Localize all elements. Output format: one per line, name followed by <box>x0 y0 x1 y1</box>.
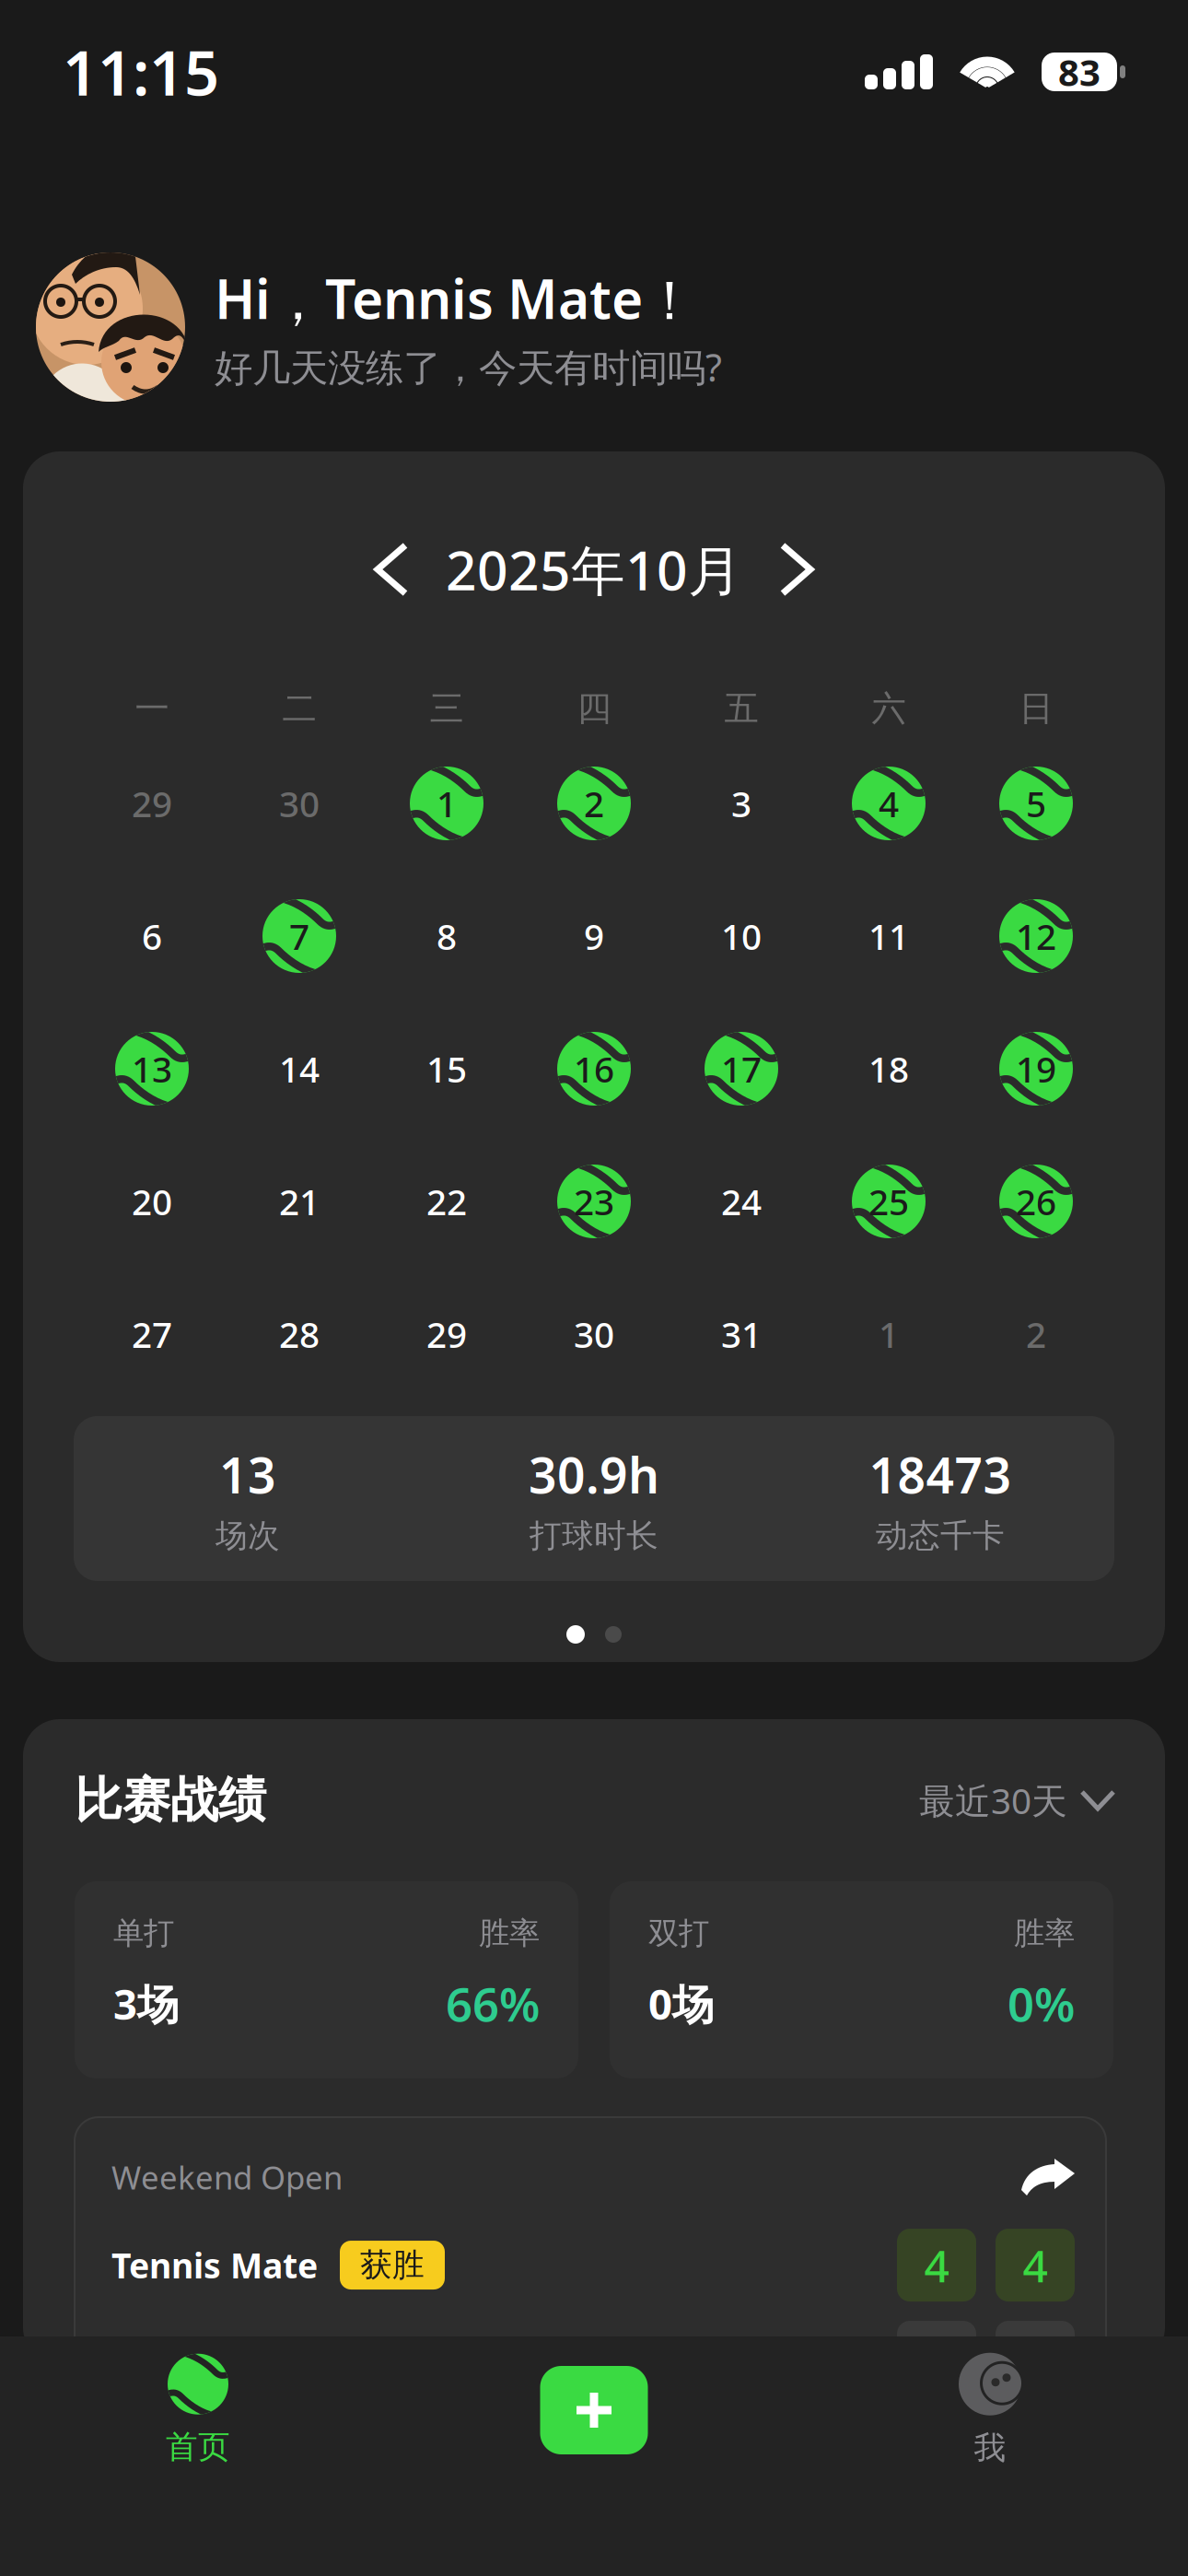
button[interactable]: Previous month <box>359 531 424 608</box>
button[interactable]: Next month <box>764 531 829 608</box>
staticText: 20 <box>132 1178 172 1225</box>
staticText: 11:15 <box>63 31 219 113</box>
staticText: 场次 <box>215 1516 280 1555</box>
staticText: 我 <box>974 2428 1006 2468</box>
staticText: 四 <box>577 687 611 730</box>
staticText: Tennis Mate <box>111 2242 318 2288</box>
staticText: 30 <box>574 1310 614 1358</box>
staticText: 22 <box>426 1178 467 1225</box>
staticText: 4 <box>879 780 899 827</box>
staticText: 0% <box>1007 1972 1075 2034</box>
staticText: 6 <box>142 912 162 960</box>
staticText: 5 <box>1026 780 1046 827</box>
staticText: 24 <box>721 1178 762 1225</box>
staticText: 18473 <box>869 1442 1012 1507</box>
staticText: 日 <box>1019 687 1053 730</box>
staticText: 胜率 <box>1014 1914 1075 1952</box>
staticText: 4 <box>924 2236 949 2294</box>
staticText: 首页 <box>166 2427 230 2467</box>
staticText: 66% <box>446 1972 540 2034</box>
staticText: 14 <box>279 1045 320 1092</box>
staticText: Weekend Open <box>111 2156 343 2198</box>
staticText: 29 <box>132 780 172 827</box>
staticText: 单打 <box>113 1914 174 1952</box>
staticText: 83 <box>1058 47 1101 96</box>
staticText: 打球时长 <box>530 1516 658 1555</box>
staticText: 17 <box>721 1045 762 1092</box>
staticText: 21 <box>279 1178 320 1225</box>
staticText: 2 <box>1026 1310 1046 1358</box>
staticText: 19 <box>1016 1045 1056 1092</box>
staticText: 31 <box>721 1310 762 1358</box>
staticText: 28 <box>279 1310 320 1358</box>
staticText: 胜率 <box>479 1914 540 1952</box>
staticText: 10 <box>721 912 762 960</box>
staticText: 3 <box>731 780 751 827</box>
staticText: 五 <box>724 687 758 730</box>
staticText: 26 <box>1016 1178 1056 1225</box>
staticText: 2025年10月 <box>446 533 742 605</box>
button[interactable]: 最近30天 <box>919 1777 1113 1824</box>
staticText: 11 <box>868 912 909 960</box>
staticText: 双打 <box>648 1914 709 1952</box>
staticText: 8 <box>437 912 457 960</box>
staticText: 25 <box>868 1178 909 1225</box>
staticText: 12 <box>1016 912 1056 960</box>
staticText: 27 <box>132 1310 172 1358</box>
staticText: 好几天没练了，今天有时间吗? <box>215 342 722 392</box>
staticText: 16 <box>574 1045 614 1092</box>
staticText: 比赛战绩 <box>75 1771 266 1830</box>
staticText: Hi，Tennis Mate！ <box>215 262 697 334</box>
staticText: 23 <box>574 1178 614 1225</box>
staticText: 三 <box>430 687 464 730</box>
staticText: 最近30天 <box>919 1777 1067 1824</box>
staticText: 15 <box>426 1045 467 1092</box>
button[interactable]: 我 <box>792 2336 1188 2484</box>
staticText: 3场 <box>113 1976 179 2031</box>
staticText: 13 <box>219 1442 276 1507</box>
staticText: 4 <box>1023 2236 1048 2294</box>
staticText: 1 <box>879 1310 899 1358</box>
staticText: 13 <box>132 1045 172 1092</box>
staticText: 0场 <box>648 1976 714 2031</box>
button[interactable]: Add <box>396 2336 792 2484</box>
staticText: 六 <box>872 687 906 730</box>
staticText: 1 <box>437 780 457 827</box>
staticText: 30 <box>279 780 320 827</box>
staticText: 动态千卡 <box>876 1516 1005 1555</box>
staticText: 获胜 <box>360 2245 425 2285</box>
staticText: 30.9h <box>529 1442 659 1507</box>
staticText: 7 <box>289 912 309 960</box>
staticText: 9 <box>584 912 604 960</box>
staticText: 18 <box>868 1045 909 1092</box>
button[interactable]: 首页 <box>0 2336 396 2484</box>
staticText: 29 <box>426 1310 467 1358</box>
button[interactable]: Share <box>1021 2159 1075 2195</box>
staticText: 一 <box>135 687 169 730</box>
staticText: 2 <box>584 780 604 827</box>
staticText: 二 <box>282 687 316 730</box>
